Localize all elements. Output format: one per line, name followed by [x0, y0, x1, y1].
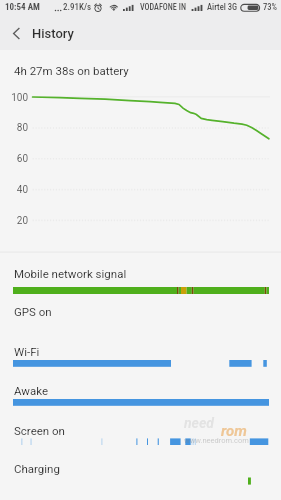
staticText: 40 [0, 184, 28, 196]
staticText: 20 [0, 215, 28, 227]
staticText: www.needrom.com [184, 436, 249, 445]
button[interactable]: Screen on [0, 417, 281, 455]
button[interactable]: Back [2, 17, 32, 50]
button[interactable]: Awake [0, 377, 281, 415]
staticText: 80 [0, 122, 28, 134]
button[interactable]: Wi-Fi [0, 338, 281, 376]
staticText: 100 [0, 92, 28, 104]
staticText: Airtel 3G [207, 2, 238, 12]
staticText: Wi-Fi [14, 345, 40, 358]
staticText: GPS on [14, 305, 52, 318]
staticText: 60 [0, 153, 28, 165]
button[interactable]: Mobile network signal [0, 260, 281, 298]
staticText: rom [221, 422, 247, 440]
button[interactable]: Charging [0, 455, 281, 493]
staticText: Screen on [14, 424, 65, 437]
staticText: 10:54 AM [5, 2, 40, 13]
staticText: 73% [263, 2, 278, 12]
staticText: VODAFONE IN [140, 2, 186, 12]
staticText: 4h 27m 38s on battery [14, 64, 129, 77]
staticText: Mobile network signal [14, 267, 127, 280]
staticText: need [184, 415, 214, 431]
staticText: 2.91K/s [63, 2, 92, 13]
staticText: History [32, 26, 74, 41]
button[interactable]: GPS on [0, 298, 281, 336]
staticText: Charging [14, 462, 60, 475]
staticText: Awake [14, 384, 49, 397]
